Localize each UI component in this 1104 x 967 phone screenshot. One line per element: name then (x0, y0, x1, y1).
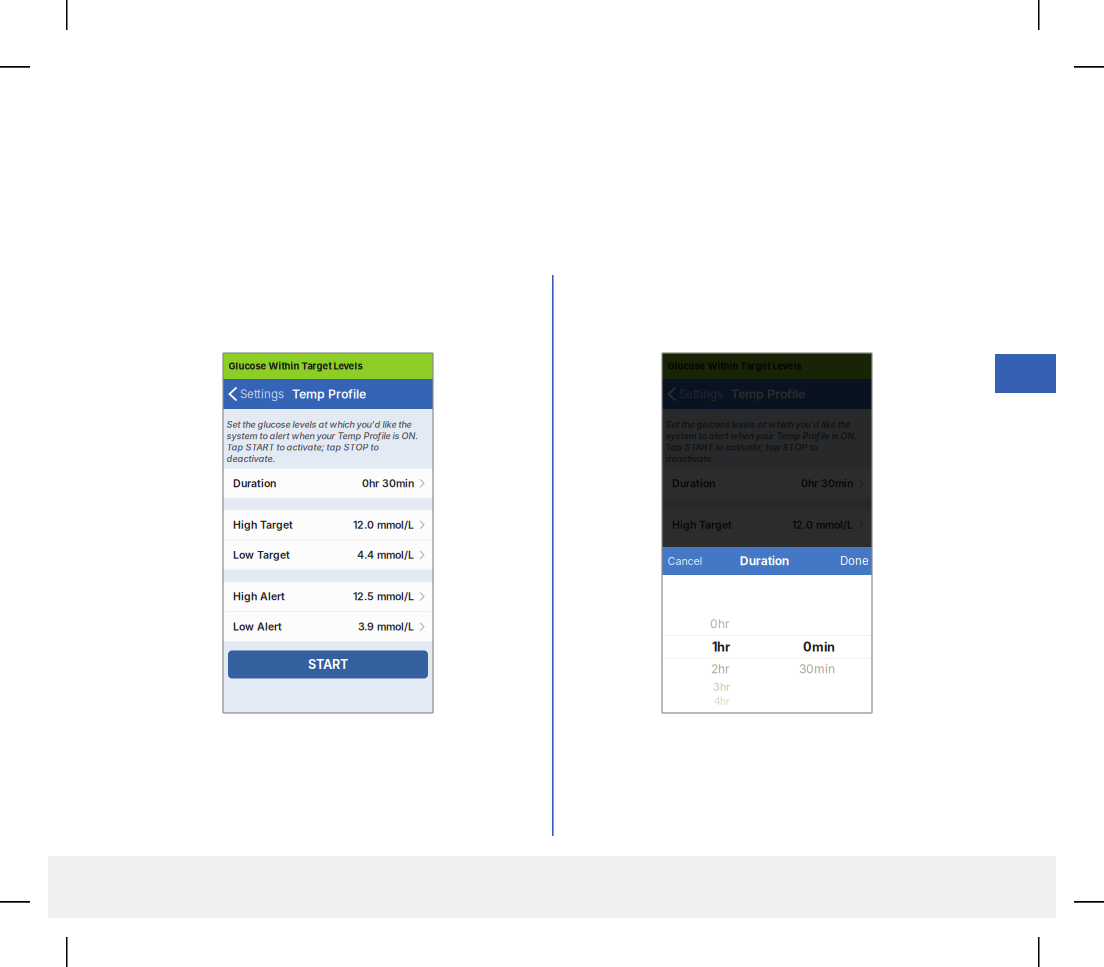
staticText: High Target (672, 518, 732, 531)
staticText: 2hr (711, 661, 730, 676)
staticText: Low Alert (233, 620, 282, 633)
staticText: Glucose Within Target Levels (667, 360, 801, 372)
staticText: Cancel (667, 554, 702, 567)
staticText: Temp Profile (292, 387, 366, 401)
staticText: Tap START to activate; tap STOP to (665, 442, 817, 453)
staticText: 0hr 30min (801, 477, 853, 490)
staticText: deactivate. (665, 453, 714, 464)
staticText: 4hr (714, 695, 730, 707)
button[interactable]: High Target (662, 510, 872, 540)
button[interactable]: High Target (223, 510, 433, 540)
staticText: Settings (240, 387, 284, 401)
staticText: deactivate. (226, 453, 275, 464)
staticText: Low Target (672, 549, 729, 561)
staticText: system to alert when your Temp Profile i… (665, 430, 857, 441)
staticText: START (747, 657, 787, 672)
staticText: Low Target (233, 549, 290, 561)
staticText: Duration (233, 477, 276, 490)
button[interactable]: Cancel (662, 547, 707, 575)
button[interactable]: Low Target (223, 540, 433, 570)
button[interactable]: Back to Settings (223, 379, 433, 409)
button[interactable]: Low Alert (223, 612, 433, 641)
staticText: High Alert (233, 590, 285, 603)
button[interactable]: Low Target (662, 540, 872, 570)
staticText: Low Alert (672, 620, 721, 633)
staticText: Temp Profile (731, 387, 805, 401)
staticText: Settings (679, 387, 723, 401)
staticText: Duration (740, 554, 789, 568)
staticText: 12.5 mmol/L (353, 590, 414, 603)
button[interactable]: Back to Settings (662, 379, 872, 409)
staticText: Set the glucose levels at which you'd li… (665, 419, 850, 430)
button[interactable]: Done (835, 547, 872, 575)
staticText: Tap START to activate; tap STOP to (226, 442, 378, 453)
staticText: START (308, 657, 348, 672)
staticText: 1hr (712, 639, 730, 654)
staticText: 12.0 mmol/L (792, 518, 853, 531)
button[interactable]: Duration (662, 469, 872, 498)
button[interactable]: START (228, 650, 428, 678)
staticText: 4.4 mmol/L (357, 549, 414, 561)
staticText: 3hr (713, 680, 730, 693)
staticText: 0min (803, 639, 835, 654)
staticText: system to alert when your Temp Profile i… (226, 430, 418, 441)
staticText: Duration (672, 477, 715, 490)
button[interactable]: START (667, 650, 867, 678)
staticText: Done (840, 554, 869, 568)
staticText: 12.0 mmol/L (353, 518, 414, 531)
button[interactable]: High Alert (223, 582, 433, 611)
button[interactable]: Duration (223, 469, 433, 498)
staticText: 0hr (710, 617, 730, 631)
staticText: 3.9 mmol/L (358, 620, 414, 633)
button[interactable]: Low Alert (662, 612, 872, 641)
staticText: High Target (233, 518, 293, 531)
staticText: Glucose Within Target Levels (228, 360, 362, 372)
staticText: Set the glucose levels at which you'd li… (226, 419, 411, 430)
staticText: 0hr 30min (362, 477, 414, 490)
staticText: 30min (799, 661, 835, 676)
staticText: 4.4 mmol/L (796, 549, 853, 561)
button[interactable]: High Alert (662, 582, 872, 611)
